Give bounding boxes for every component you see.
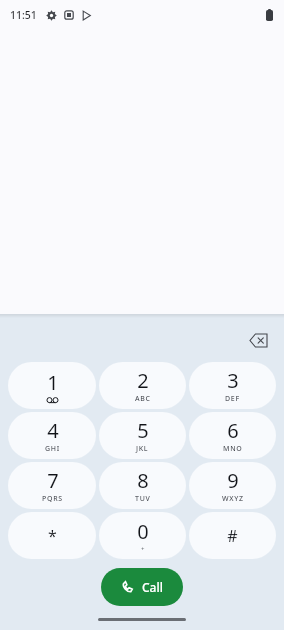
staticText: 3 bbox=[227, 367, 239, 394]
button[interactable]: Backspace bbox=[241, 323, 275, 357]
staticText: JKL bbox=[136, 444, 149, 454]
staticText: GHI bbox=[45, 444, 60, 454]
button[interactable]: 4 bbox=[8, 412, 96, 459]
staticText: DEF bbox=[225, 394, 240, 404]
button[interactable]: 8 bbox=[99, 462, 186, 509]
staticText: 4 bbox=[47, 417, 59, 444]
staticText: TUV bbox=[135, 494, 151, 504]
button[interactable]: * bbox=[8, 512, 96, 559]
staticText: 1 bbox=[47, 369, 59, 396]
staticText: 6 bbox=[227, 417, 239, 444]
staticText: # bbox=[227, 525, 238, 547]
staticText: 8 bbox=[137, 467, 149, 494]
button[interactable]: 5 bbox=[99, 412, 186, 459]
button[interactable]: 0 bbox=[99, 512, 186, 559]
staticText: 0 bbox=[137, 518, 149, 545]
staticText: + bbox=[141, 545, 145, 553]
button[interactable]: Call bbox=[101, 568, 183, 606]
button[interactable]: 2 bbox=[99, 362, 186, 409]
button[interactable]: 1 bbox=[8, 362, 96, 409]
button[interactable]: 9 bbox=[189, 462, 276, 509]
staticText: 9 bbox=[227, 467, 239, 494]
button[interactable]: 7 bbox=[8, 462, 96, 509]
staticText: * bbox=[48, 525, 57, 547]
staticText: WXYZ bbox=[222, 494, 244, 504]
staticText: Call bbox=[142, 579, 163, 595]
staticText: 11:51 bbox=[10, 8, 37, 22]
staticText: ABC bbox=[135, 394, 151, 404]
staticText: 7 bbox=[47, 467, 59, 494]
staticText: 2 bbox=[137, 367, 149, 394]
button[interactable]: # bbox=[189, 512, 276, 559]
button[interactable]: 3 bbox=[189, 362, 276, 409]
staticText: 5 bbox=[137, 417, 149, 444]
staticText: MNO bbox=[223, 444, 243, 454]
button[interactable]: 6 bbox=[189, 412, 276, 459]
staticText: PQRS bbox=[42, 494, 63, 504]
